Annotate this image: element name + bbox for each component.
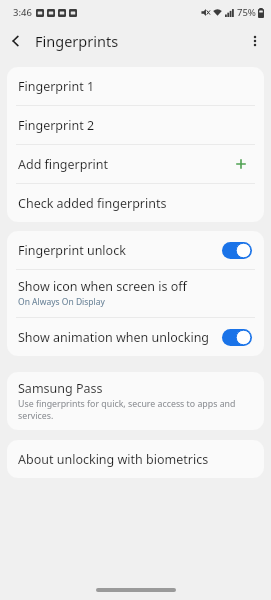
- staticText: Samsung Pass: [18, 380, 103, 397]
- staticText: Show animation when unlocking: [18, 329, 210, 346]
- button[interactable]: Fingerprint unlock: [7, 231, 264, 269]
- button[interactable]: Show icon when screen is off: [7, 270, 264, 317]
- button[interactable]: Add fingerprint: [229, 152, 253, 176]
- button[interactable]: Toggle: [221, 240, 253, 260]
- button[interactable]: Check added fingerprints: [7, 184, 264, 222]
- button[interactable]: Fingerprint 1: [7, 67, 264, 105]
- button[interactable]: More options: [239, 25, 271, 57]
- button[interactable]: Fingerprint 2: [7, 106, 264, 144]
- staticText: About unlocking with biometrics: [18, 451, 209, 468]
- button[interactable]: Add fingerprint: [7, 145, 264, 183]
- staticText: Use fingerprints for quick, secure acces…: [18, 398, 253, 421]
- staticText: Fingerprint 2: [18, 117, 95, 134]
- staticText: Add fingerprint: [18, 156, 109, 173]
- staticText: Fingerprints: [35, 31, 119, 51]
- staticText: On Always On Display: [18, 296, 105, 308]
- button[interactable]: Show animation when unlocking: [7, 318, 264, 356]
- button[interactable]: Samsung Pass: [7, 372, 264, 430]
- button[interactable]: Back: [0, 25, 32, 57]
- staticText: Check added fingerprints: [18, 195, 167, 212]
- button[interactable]: About unlocking with biometrics: [7, 440, 264, 478]
- staticText: Fingerprint unlock: [18, 242, 126, 259]
- staticText: Fingerprint 1: [18, 78, 95, 95]
- staticText: 75%: [237, 6, 256, 19]
- staticText: Show icon when screen is off: [18, 278, 187, 295]
- button[interactable]: Toggle: [221, 327, 253, 347]
- staticText: 3:46: [13, 6, 32, 19]
